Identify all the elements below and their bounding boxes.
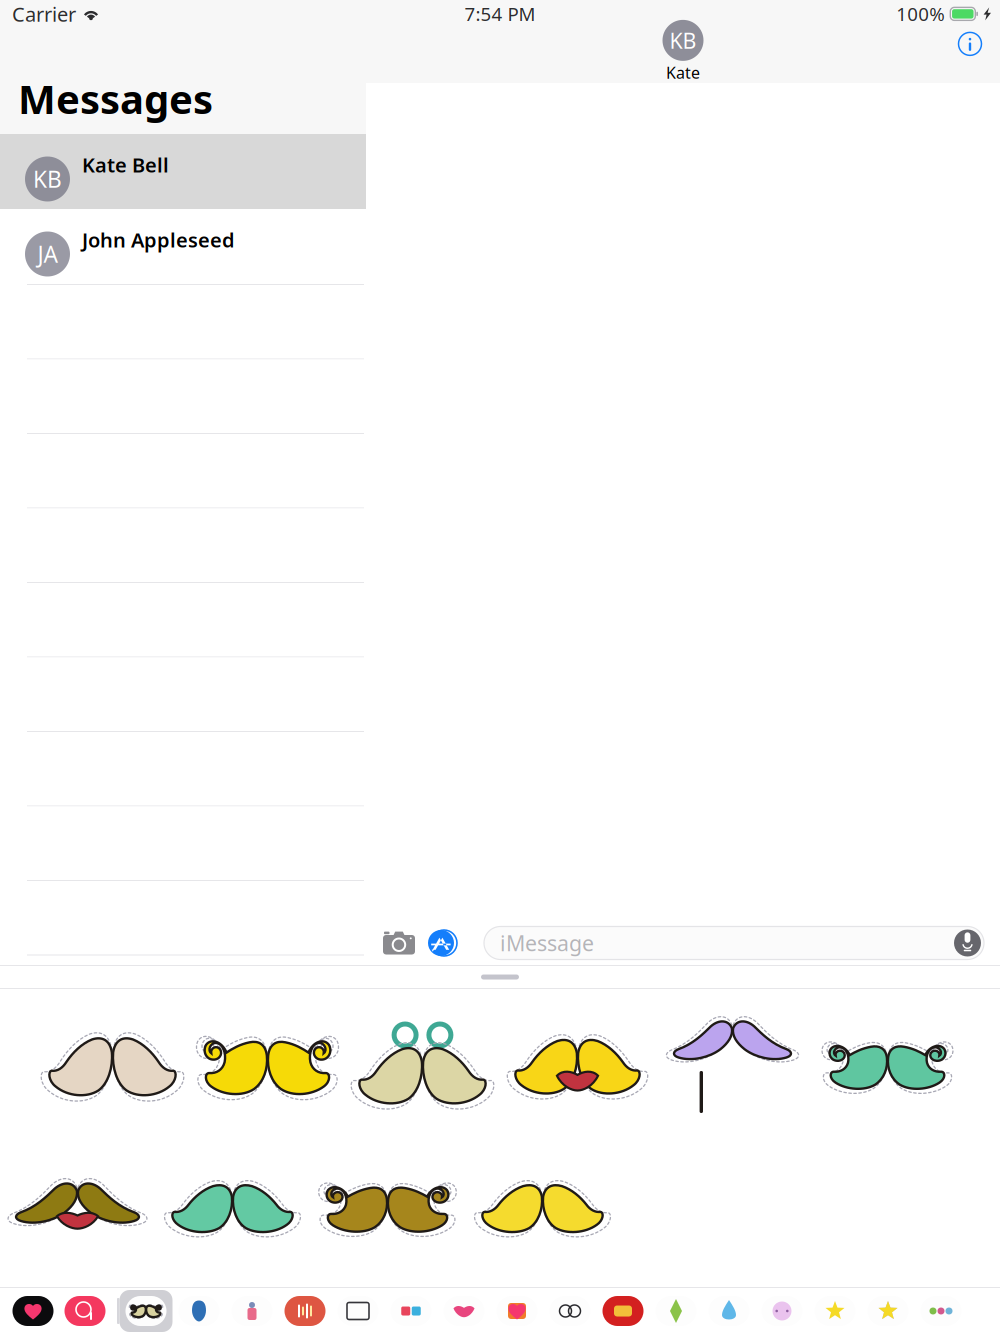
- button[interactable]: Mustache sticker: [465, 1161, 620, 1255]
- button[interactable]: Sticker pack 5: [225, 1288, 278, 1334]
- button[interactable]: Sticker pack 1: [7, 1288, 59, 1334]
- button[interactable]: Sticker pack 9: [437, 1288, 490, 1334]
- button[interactable]: Apps: [426, 928, 456, 958]
- staticText: Kate: [666, 62, 700, 83]
- button[interactable]: Sticker pack 14: [702, 1288, 755, 1334]
- button[interactable]: JA: [0, 209, 366, 284]
- staticText: Kate Bell: [82, 151, 169, 178]
- button[interactable]: Mustache sticker: [155, 1161, 310, 1255]
- button[interactable]: Sticker pack 11: [543, 1288, 596, 1334]
- button[interactable]: Mustache sticker: [810, 1019, 965, 1113]
- button[interactable]: Sticker pack 10: [490, 1288, 543, 1334]
- staticText: Carrier: [12, 1, 76, 27]
- button[interactable]: Details: [948, 26, 992, 62]
- button[interactable]: Sticker pack 13: [649, 1288, 702, 1334]
- staticText: 100%: [896, 1, 945, 26]
- button[interactable]: Mustache sticker: [500, 1019, 655, 1113]
- button[interactable]: Sticker pack 8: [384, 1288, 437, 1334]
- staticText: KB: [33, 164, 62, 194]
- button[interactable]: Mustache sticker: [345, 1019, 500, 1113]
- button[interactable]: Dictate: [954, 929, 981, 956]
- staticText: 7:54 PM: [464, 1, 535, 26]
- staticText: John Appleseed: [82, 226, 235, 253]
- button[interactable]: Mustache sticker: [655, 1019, 810, 1113]
- staticText: Messages: [18, 72, 213, 125]
- button[interactable]: Sticker pack 18: [914, 1288, 967, 1334]
- button[interactable]: Sticker pack 17: [861, 1288, 914, 1334]
- button[interactable]: Sticker pack 2: [59, 1288, 111, 1334]
- button[interactable]: Mustache sticker pack: [119, 1288, 172, 1334]
- staticText: KB: [669, 26, 696, 54]
- button[interactable]: Sticker pack 16: [808, 1288, 861, 1334]
- button[interactable]: Sticker pack 4: [172, 1288, 225, 1334]
- button[interactable]: Mustache sticker: [190, 1019, 345, 1113]
- button[interactable]: Mustache sticker: [0, 1161, 155, 1255]
- button[interactable]: Sticker pack 12: [596, 1288, 649, 1334]
- button[interactable]: Mustache sticker: [35, 1019, 190, 1113]
- staticText: iMessage: [500, 929, 594, 957]
- button[interactable]: Sticker pack 6: [278, 1288, 331, 1334]
- button[interactable]: Mustache sticker: [310, 1161, 465, 1255]
- button[interactable]: Sticker pack 7: [331, 1288, 384, 1334]
- button[interactable]: Sticker pack 15: [755, 1288, 808, 1334]
- button[interactable]: Camera: [382, 928, 416, 958]
- staticText: JA: [37, 239, 57, 269]
- button[interactable]: KB: [0, 134, 366, 209]
